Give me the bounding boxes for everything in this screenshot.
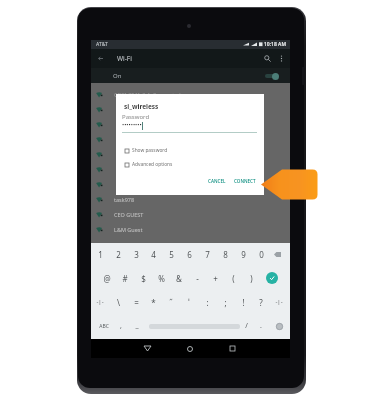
staticText: + — [213, 273, 218, 284]
button[interactable]: + — [206, 267, 224, 289]
button[interactable]: ; — [216, 291, 234, 313]
button[interactable]: 3 — [127, 243, 145, 265]
staticText: 3 — [134, 249, 139, 260]
button[interactable]: Advanced options — [125, 161, 173, 168]
button[interactable]: Enter — [263, 267, 281, 289]
button[interactable]: ? — [252, 291, 270, 313]
button[interactable]: 7 — [198, 243, 216, 265]
staticText: \ — [117, 297, 120, 308]
button[interactable]: Backspace — [269, 243, 285, 265]
button[interactable]: % — [152, 267, 170, 289]
staticText: : — [206, 297, 209, 308]
staticText: si_wireless — [124, 102, 159, 111]
button[interactable]: 4 — [144, 243, 162, 265]
button[interactable]: 8 — [216, 243, 234, 265]
button[interactable]: Home — [179, 339, 201, 358]
button[interactable]: 9 — [234, 243, 252, 265]
staticText: @ — [103, 273, 111, 284]
button[interactable]: 2 — [109, 243, 127, 265]
staticText: CONNECT — [234, 178, 256, 184]
button[interactable]: Search — [259, 49, 275, 68]
button[interactable]: ˈ — [180, 291, 198, 313]
staticText: CANCEL — [208, 178, 226, 184]
button[interactable] — [91, 162, 290, 177]
staticText: - — [196, 273, 199, 284]
staticText: _ — [135, 321, 139, 331]
button[interactable]: task978 — [91, 192, 290, 207]
staticText: . — [260, 321, 262, 331]
staticText: = — [134, 297, 139, 308]
button[interactable]: On — [91, 68, 290, 83]
button[interactable]: . — [252, 315, 270, 337]
button[interactable]: 5 — [162, 243, 180, 265]
button[interactable]: Recents — [221, 339, 243, 358]
button[interactable] — [91, 177, 290, 192]
staticText: , — [120, 321, 122, 331]
staticText: CEO GUEST — [114, 211, 144, 218]
staticText: Password — [122, 113, 150, 121]
button[interactable]: ! — [234, 291, 252, 313]
button[interactable]: L&M Guest — [91, 222, 290, 237]
button[interactable]: More options — [275, 49, 288, 68]
staticText: $ — [141, 273, 146, 284]
button[interactable]: $ — [134, 267, 152, 289]
staticText: 6 — [187, 249, 192, 260]
button[interactable]: CANCEL — [205, 175, 229, 187]
staticText: -|- — [96, 298, 104, 306]
staticText: ? — [259, 297, 263, 308]
button[interactable]: Space — [149, 315, 240, 337]
button[interactable]: 0 — [252, 243, 270, 265]
button[interactable] — [91, 132, 290, 147]
button[interactable]: - — [188, 267, 206, 289]
staticText: ) — [250, 273, 253, 284]
button[interactable]: ABC — [95, 315, 113, 337]
button[interactable]: -|- — [270, 291, 288, 313]
button[interactable]: , — [112, 315, 130, 337]
button[interactable]: Show password — [125, 147, 168, 154]
staticText: On — [113, 72, 122, 80]
staticText: -|- — [275, 298, 283, 306]
staticText: task978 — [114, 196, 135, 203]
button[interactable]: ˝ — [162, 291, 180, 313]
staticText: ! — [242, 297, 245, 308]
staticText: 10:18 AM — [264, 41, 286, 48]
staticText: 4 — [151, 249, 156, 260]
staticText: 9 — [241, 249, 246, 260]
button[interactable] — [91, 117, 290, 132]
staticText: 8 — [223, 249, 228, 260]
button[interactable]: CBCI-2F41-2.4 Connected — [91, 87, 290, 102]
button[interactable]: Back — [91, 49, 109, 68]
button[interactable]: # — [116, 267, 134, 289]
staticText: ; — [224, 297, 227, 308]
staticText: # — [122, 273, 128, 284]
button[interactable]: 6 — [180, 243, 198, 265]
button[interactable]: @ — [98, 267, 116, 289]
button[interactable] — [91, 147, 290, 162]
staticText: 2 — [116, 249, 121, 260]
staticText: & — [176, 273, 182, 284]
button[interactable]: CEO GUEST — [91, 207, 290, 222]
button[interactable]: : — [198, 291, 216, 313]
staticText: ABC — [99, 323, 109, 330]
button[interactable]: -|- — [91, 291, 109, 313]
button[interactable]: 1 — [91, 243, 109, 265]
staticText: % — [158, 273, 165, 284]
button[interactable]: Emoji — [272, 315, 286, 337]
button[interactable]: CONNECT — [231, 175, 259, 187]
button[interactable]: / — [237, 315, 255, 337]
staticText: ( — [232, 273, 235, 284]
staticText: 7 — [205, 249, 210, 260]
button[interactable] — [91, 102, 290, 117]
staticText: L&M Guest — [114, 226, 143, 233]
button[interactable]: Back — [136, 339, 158, 358]
button[interactable]: = — [127, 291, 145, 313]
button[interactable]: * — [144, 291, 162, 313]
button[interactable]: & — [170, 267, 188, 289]
staticText: Advanced options — [132, 161, 173, 168]
staticText: Wi-Fi — [117, 54, 132, 63]
button[interactable]: _ — [128, 315, 146, 337]
staticText: CBCI-2F41-2.4 Connected — [114, 91, 181, 98]
button[interactable]: ) — [242, 267, 260, 289]
button[interactable]: \ — [109, 291, 127, 313]
button[interactable]: ( — [224, 267, 242, 289]
